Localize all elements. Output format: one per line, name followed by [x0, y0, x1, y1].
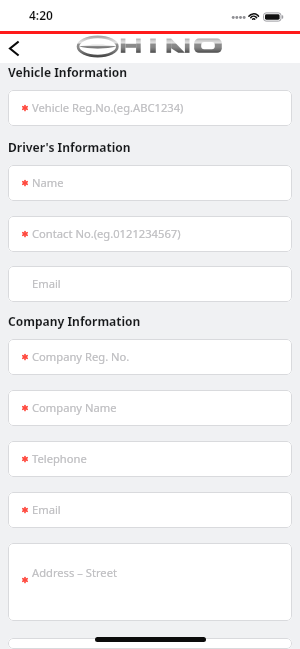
button[interactable]: Email: [8, 266, 292, 302]
staticText: Vehicle Information: [8, 64, 128, 80]
button[interactable]: Vehicle Reg.No.(eg.ABC1234): [8, 90, 292, 126]
staticText: Contact No.(eg.0121234567): [32, 226, 181, 241]
staticText: Email: [32, 502, 61, 517]
staticText: Driver's Information: [8, 139, 131, 155]
button[interactable]: Address – Street: [8, 543, 292, 621]
button[interactable]: Contact No.(eg.0121234567): [8, 216, 292, 252]
button[interactable]: Company Reg. No.: [8, 339, 292, 375]
button[interactable]: Telephone: [8, 441, 292, 477]
staticText: Vehicle Reg.No.(eg.ABC1234): [32, 100, 184, 115]
staticText: Company Name: [32, 400, 117, 415]
staticText: Company Information: [8, 313, 141, 329]
staticText: Name: [32, 175, 64, 190]
button[interactable]: Back: [0, 35, 28, 63]
button[interactable]: Company Name: [8, 390, 292, 426]
staticText: Company Reg. No.: [32, 349, 130, 364]
staticText: Telephone: [32, 451, 87, 466]
staticText: Address – Street: [32, 565, 117, 580]
button[interactable]: Email: [8, 492, 292, 528]
button[interactable]: [8, 638, 292, 649]
button[interactable]: Name: [8, 165, 292, 201]
staticText: Email: [32, 276, 61, 291]
staticText: 4:20: [29, 7, 53, 23]
